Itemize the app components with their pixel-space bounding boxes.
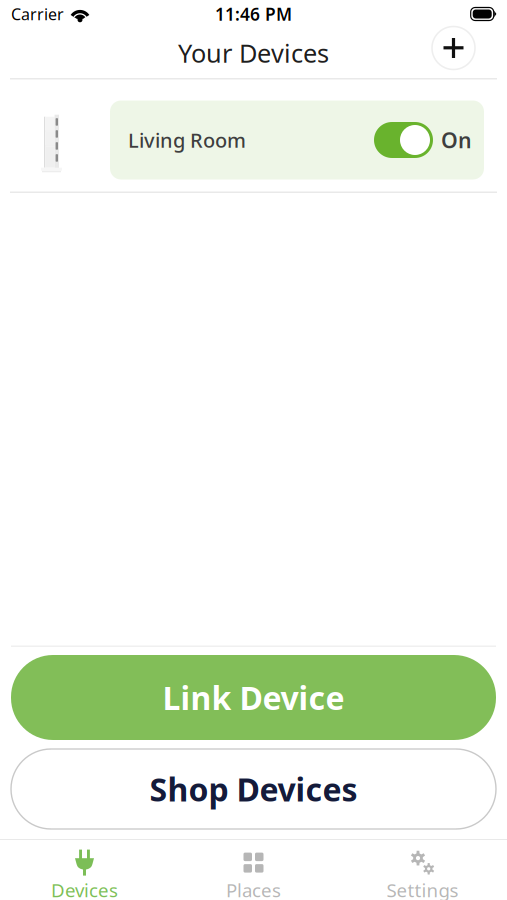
button[interactable]: Living Room xyxy=(0,100,507,179)
staticText: Places xyxy=(226,878,281,900)
staticText: 11:46 PM xyxy=(215,2,292,25)
staticText: Living Room xyxy=(128,127,246,153)
staticText: Carrier xyxy=(11,3,64,25)
button[interactable]: Settings xyxy=(338,839,507,900)
button[interactable]: Shop Devices xyxy=(11,749,496,829)
button[interactable]: Link Device xyxy=(11,655,496,740)
staticText: Your Devices xyxy=(178,36,329,70)
button[interactable]: Places xyxy=(169,839,338,900)
staticText: Shop Devices xyxy=(149,768,357,810)
staticText: Link Device xyxy=(162,676,344,719)
staticText: On xyxy=(441,126,472,154)
staticText: Settings xyxy=(386,878,458,900)
staticText: Devices xyxy=(51,878,118,900)
button[interactable]: Add device xyxy=(432,26,475,69)
button[interactable]: Devices xyxy=(0,839,169,900)
